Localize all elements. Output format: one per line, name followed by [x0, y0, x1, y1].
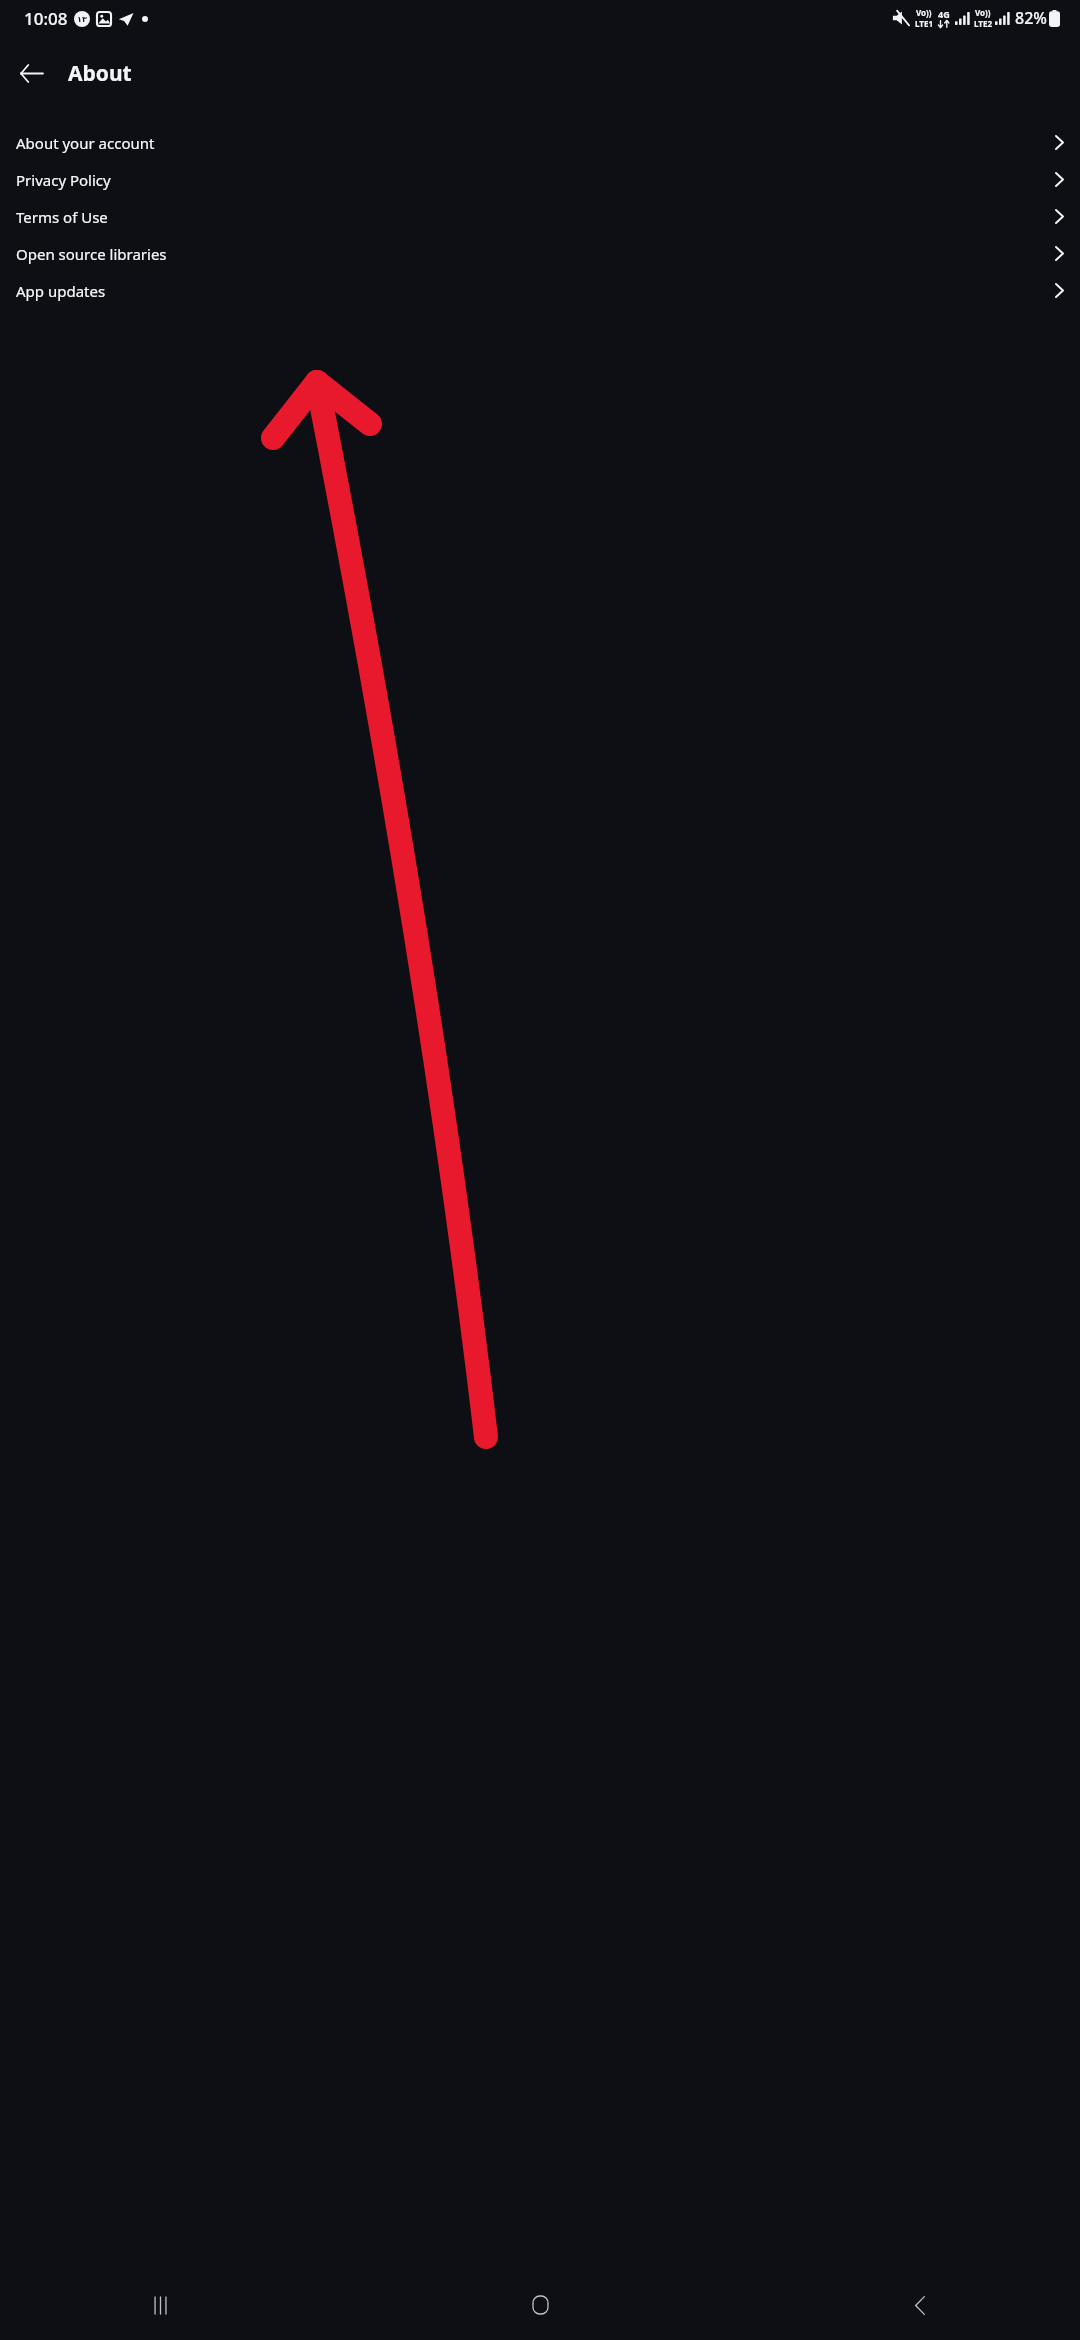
staticText: App updates	[16, 281, 106, 301]
staticText: LTE2	[974, 18, 992, 29]
staticText: Vo))	[975, 7, 991, 18]
button[interactable]: Privacy Policy	[0, 161, 1080, 198]
button[interactable]: Recent apps	[132, 2277, 188, 2333]
button[interactable]: Terms of Use	[0, 198, 1080, 235]
button[interactable]: App updates	[0, 272, 1080, 309]
staticText: LTE1	[915, 18, 933, 29]
staticText: Vo))	[916, 7, 932, 18]
button[interactable]: Open source libraries	[0, 235, 1080, 272]
button[interactable]: Home	[512, 2277, 568, 2333]
button[interactable]: About your account	[0, 124, 1080, 161]
button[interactable]: Back	[8, 49, 56, 97]
button[interactable]: Back	[892, 2277, 948, 2333]
staticText: Terms of Use	[16, 207, 108, 227]
staticText: 10:08	[24, 7, 68, 30]
staticText: Privacy Policy	[16, 170, 111, 190]
staticText: 4G	[938, 8, 950, 20]
staticText: About	[68, 59, 132, 88]
staticText: 82%	[1015, 7, 1047, 29]
staticText: About your account	[16, 133, 155, 153]
staticText: ۱۳	[77, 15, 87, 24]
staticText: Open source libraries	[16, 244, 167, 264]
